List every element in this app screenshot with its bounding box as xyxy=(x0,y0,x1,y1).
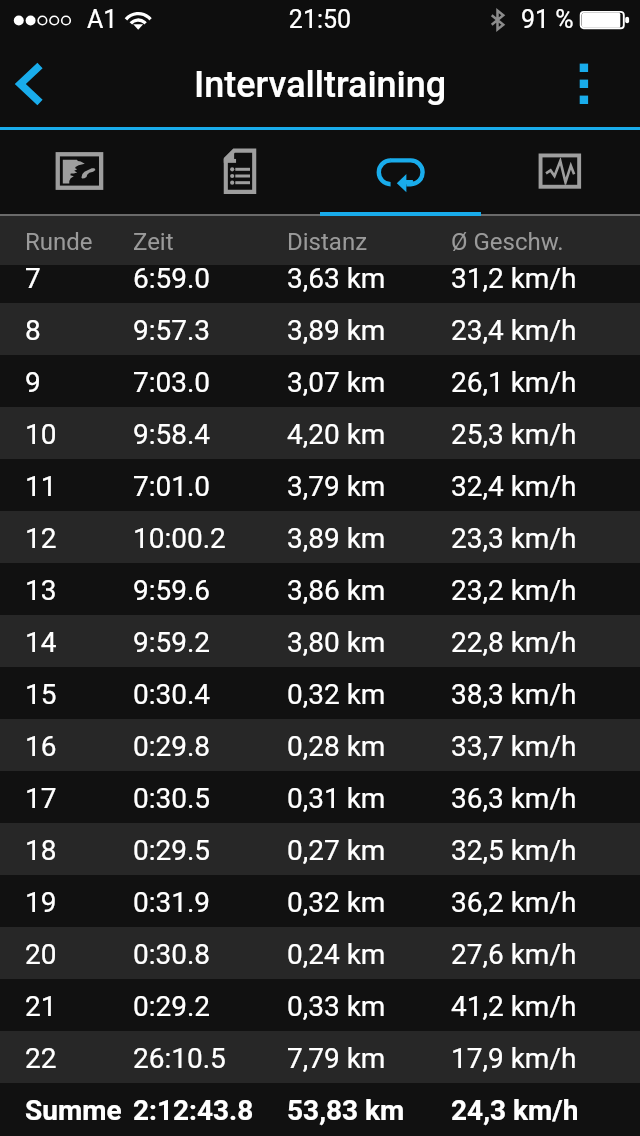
button[interactable]: More options xyxy=(562,40,640,127)
staticText: Intervalltraining xyxy=(194,64,447,106)
button[interactable]: 13 xyxy=(0,563,640,615)
staticText: 3,80 km xyxy=(287,626,386,659)
staticText: 21 xyxy=(25,990,57,1023)
staticText: 32,4 km/h xyxy=(451,470,577,503)
button[interactable]: Summe xyxy=(0,1083,640,1136)
button[interactable]: 10 xyxy=(0,407,640,459)
button[interactable]: 7 xyxy=(0,265,640,303)
staticText: 10:00.2 xyxy=(133,522,226,555)
staticText: 91 % xyxy=(521,5,574,34)
staticText: 22,8 km/h xyxy=(451,626,577,659)
staticText: 36,3 km/h xyxy=(451,782,577,815)
staticText: 0:30.8 xyxy=(133,938,211,971)
staticText: 23,3 km/h xyxy=(451,522,577,555)
staticText: 25,3 km/h xyxy=(451,418,577,451)
staticText: 9:59.2 xyxy=(133,626,211,659)
staticText: 33,7 km/h xyxy=(451,730,577,763)
button[interactable]: Map xyxy=(0,130,160,216)
staticText: 0,33 km xyxy=(287,990,386,1023)
staticText: 11 xyxy=(25,470,57,503)
staticText: 3,86 km xyxy=(287,574,386,607)
staticText: 7,79 km xyxy=(287,1042,386,1075)
staticText: Summe xyxy=(25,1094,122,1127)
staticText: 0:29.5 xyxy=(133,834,211,867)
staticText: 14 xyxy=(25,626,57,659)
staticText: 0:30.5 xyxy=(133,782,211,815)
staticText: 21:50 xyxy=(0,5,640,34)
staticText: 10 xyxy=(25,418,57,451)
staticText: 0:29.2 xyxy=(133,990,211,1023)
staticText: 7:01.0 xyxy=(133,470,211,503)
staticText: 0,32 km xyxy=(287,886,386,919)
staticText: 17,9 km/h xyxy=(451,1042,577,1075)
staticText: 2:12:43.8 xyxy=(133,1094,254,1127)
staticText: 17 xyxy=(25,782,57,815)
staticText: 53,83 km xyxy=(287,1094,405,1127)
button[interactable]: Details xyxy=(160,130,320,216)
staticText: 7 xyxy=(25,262,41,295)
staticText: 3,63 km xyxy=(287,262,386,295)
button[interactable]: 17 xyxy=(0,771,640,823)
staticText: 41,2 km/h xyxy=(451,990,577,1023)
staticText: 9 xyxy=(25,366,41,399)
staticText: Distanz xyxy=(287,228,368,256)
staticText: 27,6 km/h xyxy=(451,938,577,971)
staticText: 0:31.9 xyxy=(133,886,211,919)
button[interactable]: Chart xyxy=(480,130,640,216)
staticText: 9:57.3 xyxy=(133,314,211,347)
staticText: 0,32 km xyxy=(287,678,386,711)
staticText: 9:58.4 xyxy=(133,418,211,451)
button[interactable]: 22 xyxy=(0,1031,640,1083)
button[interactable]: 11 xyxy=(0,459,640,511)
button[interactable]: 20 xyxy=(0,927,640,979)
staticText: 4,20 km xyxy=(287,418,386,451)
staticText: 3,89 km xyxy=(287,314,386,347)
staticText: 12 xyxy=(25,522,57,555)
staticText: Runde xyxy=(25,228,93,256)
button[interactable]: Intervals xyxy=(320,130,480,216)
staticText: 9:59.6 xyxy=(133,574,211,607)
staticText: Zeit xyxy=(133,228,174,256)
staticText: 32,5 km/h xyxy=(451,834,577,867)
staticText: 0,28 km xyxy=(287,730,386,763)
button[interactable]: 18 xyxy=(0,823,640,875)
staticText: 8 xyxy=(25,314,41,347)
staticText: 0:30.4 xyxy=(133,678,211,711)
staticText: 15 xyxy=(25,678,57,711)
staticText: 38,3 km/h xyxy=(451,678,577,711)
staticText: Ø Geschw. xyxy=(451,228,564,256)
staticText: 36,2 km/h xyxy=(451,886,577,919)
button[interactable]: Back xyxy=(0,40,78,127)
staticText: 26:10.5 xyxy=(133,1042,226,1075)
staticText: 24,3 km/h xyxy=(451,1094,579,1127)
staticText: 3,89 km xyxy=(287,522,386,555)
button[interactable]: 21 xyxy=(0,979,640,1031)
button[interactable]: 15 xyxy=(0,667,640,719)
staticText: 3,79 km xyxy=(287,470,386,503)
staticText: 23,2 km/h xyxy=(451,574,577,607)
button[interactable]: 9 xyxy=(0,355,640,407)
button[interactable]: 19 xyxy=(0,875,640,927)
staticText: 0,24 km xyxy=(287,938,386,971)
staticText: A1 xyxy=(87,5,118,34)
staticText: 0,27 km xyxy=(287,834,386,867)
staticText: 22 xyxy=(25,1042,57,1075)
button[interactable]: 12 xyxy=(0,511,640,563)
staticText: 18 xyxy=(25,834,57,867)
staticText: 20 xyxy=(25,938,57,971)
staticText: 19 xyxy=(25,886,57,919)
staticText: 16 xyxy=(25,730,57,763)
button[interactable]: 8 xyxy=(0,303,640,355)
staticText: 31,2 km/h xyxy=(451,262,577,295)
staticText: 6:59.0 xyxy=(133,262,211,295)
staticText: 13 xyxy=(25,574,57,607)
button[interactable]: 16 xyxy=(0,719,640,771)
staticText: 7:03.0 xyxy=(133,366,211,399)
staticText: 0,31 km xyxy=(287,782,386,815)
staticText: 26,1 km/h xyxy=(451,366,577,399)
staticText: 0:29.8 xyxy=(133,730,211,763)
button[interactable]: 14 xyxy=(0,615,640,667)
staticText: 3,07 km xyxy=(287,366,386,399)
staticText: 23,4 km/h xyxy=(451,314,577,347)
